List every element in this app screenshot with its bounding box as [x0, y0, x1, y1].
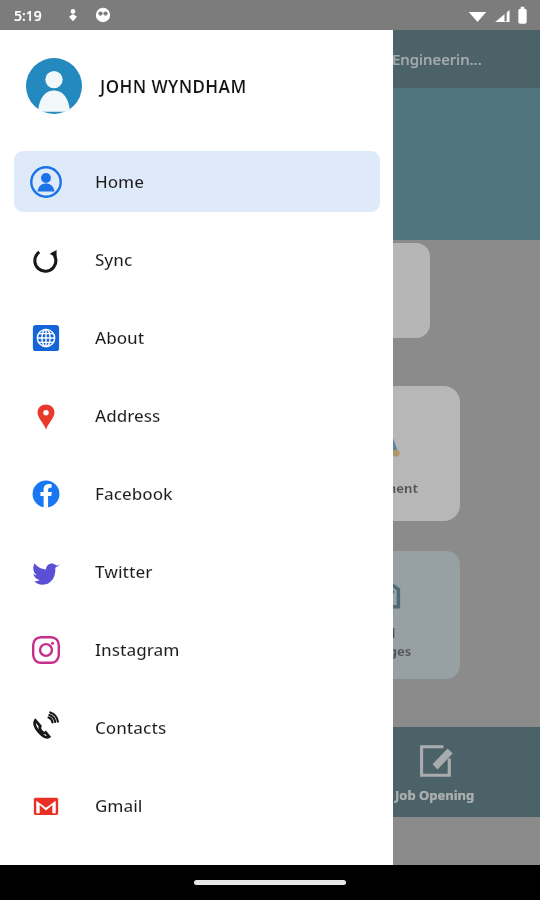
staticText: Job Opening — [395, 786, 475, 804]
button[interactable]: Instagram — [14, 619, 380, 680]
staticText: Gmail — [95, 794, 143, 817]
button[interactable]: Gmail — [14, 775, 380, 836]
button[interactable]: About — [14, 307, 380, 368]
staticText: Facebook — [95, 482, 173, 505]
button[interactable]: Home — [14, 151, 380, 212]
staticText: Send — [364, 624, 396, 642]
staticText: Instagram — [95, 638, 180, 661]
button[interactable]: Sync — [14, 229, 380, 290]
staticText: Engineerin... — [392, 49, 482, 69]
staticText: Messages — [348, 642, 412, 660]
staticText: About — [95, 326, 145, 349]
button[interactable]: Facebook — [14, 463, 380, 524]
staticText: JOHN WYNDHAM — [100, 75, 247, 98]
button[interactable]: Contacts — [14, 697, 380, 758]
staticText: Address — [95, 404, 161, 427]
staticText: Contacts — [95, 716, 167, 739]
button[interactable]: Address — [14, 385, 380, 446]
staticText: Twitter — [95, 560, 153, 583]
staticText: Home — [95, 170, 144, 193]
staticText: 5:19 — [14, 6, 42, 25]
staticText: Assignment — [341, 479, 419, 497]
button[interactable]: Twitter — [14, 541, 380, 602]
staticText: Sync — [95, 248, 133, 271]
